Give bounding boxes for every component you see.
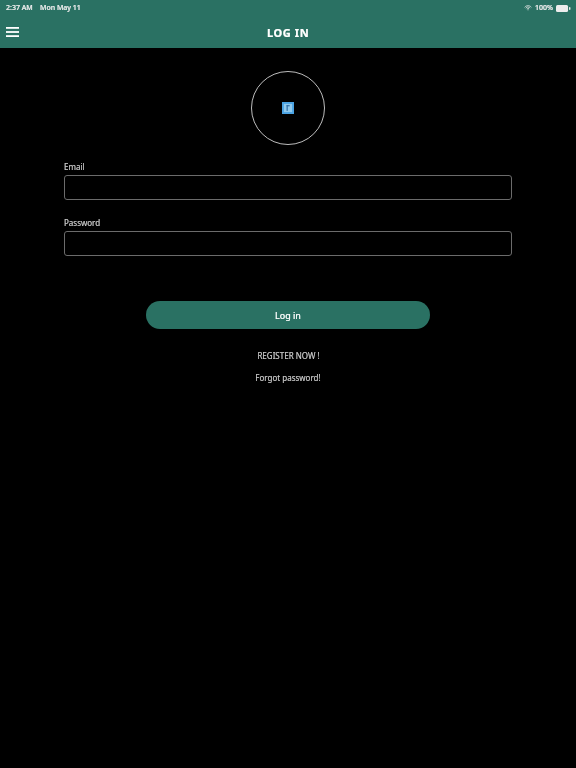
button[interactable] <box>64 175 512 200</box>
button[interactable]: App logo <box>251 71 325 145</box>
staticText: LOG IN <box>267 25 310 40</box>
button[interactable]: Log in <box>146 301 430 329</box>
button[interactable] <box>64 231 512 256</box>
staticText: Forgot password! <box>255 372 321 383</box>
button[interactable]: REGISTER NOW ! <box>249 348 328 363</box>
button[interactable]: Forgot password! <box>247 370 329 385</box>
staticText: 2:37 AM <box>6 3 33 13</box>
button[interactable]: Open navigation menu <box>0 20 24 44</box>
staticText: 100% <box>535 3 553 13</box>
staticText: REGISTER NOW ! <box>257 350 320 361</box>
staticText: Log in <box>275 309 301 321</box>
staticText: Password <box>64 217 101 228</box>
staticText: Mon May 11 <box>40 3 81 13</box>
staticText: Email <box>64 161 85 172</box>
